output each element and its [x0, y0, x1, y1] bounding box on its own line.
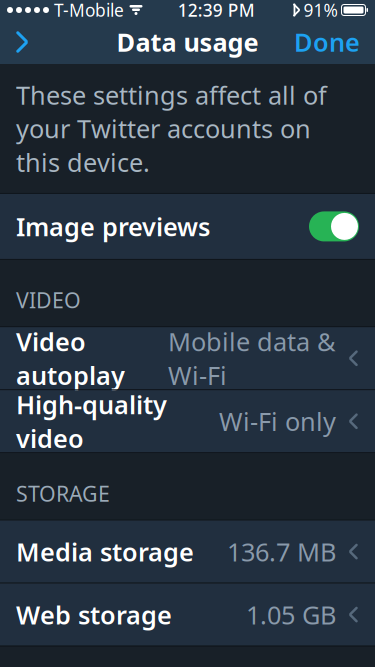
- staticText: 136.7 MB: [227, 535, 336, 568]
- staticText: High-quality video: [16, 388, 167, 455]
- staticText: Done: [294, 25, 360, 59]
- staticText: Image previews: [16, 210, 210, 243]
- button[interactable]: Video autoplay: [0, 327, 375, 389]
- button[interactable]: Back: [0, 20, 44, 64]
- staticText: STORAGE: [16, 479, 110, 508]
- button[interactable]: Web storage: [0, 584, 375, 646]
- staticText: T-Mobile: [54, 0, 124, 21]
- staticText: Wi-Fi only: [219, 404, 336, 438]
- staticText: Mobile data & Wi-Fi: [168, 325, 336, 392]
- staticText: VIDEO: [16, 286, 81, 314]
- staticText: 12:39 PM: [178, 0, 255, 21]
- staticText: These settings affect all of your Twitte…: [16, 78, 327, 179]
- button[interactable]: Image previews: [0, 194, 375, 259]
- staticText: 91%: [303, 0, 337, 21]
- button[interactable]: Done: [279, 20, 375, 64]
- staticText: Data usage: [116, 25, 258, 59]
- staticText: Media storage: [16, 535, 194, 568]
- staticText: 1.05 GB: [246, 598, 336, 631]
- staticText: Web storage: [16, 598, 172, 631]
- button[interactable]: High-quality video: [0, 390, 375, 452]
- button[interactable]: Media storage: [0, 521, 375, 583]
- staticText: Video autoplay: [16, 325, 125, 392]
